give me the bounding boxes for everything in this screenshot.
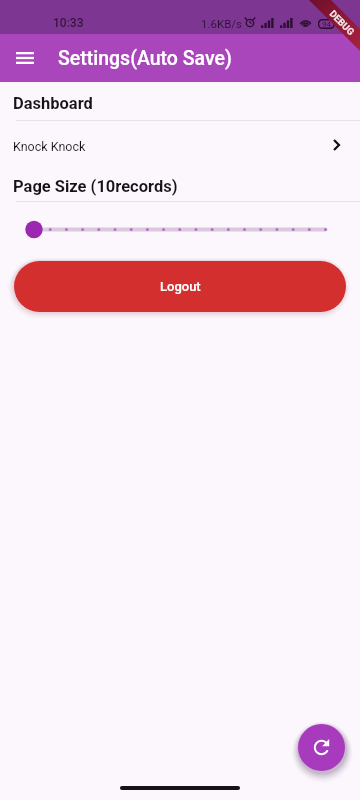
staticText: Knock Knock — [13, 139, 86, 154]
button[interactable]: Dashboard — [0, 82, 360, 120]
staticText: 10:33 — [53, 16, 84, 30]
staticText: Dashboard — [13, 94, 93, 113]
button[interactable]: Page Size (10records) — [0, 168, 360, 201]
staticText: Page Size (10records) — [13, 177, 178, 196]
staticText: DEBUG — [327, 8, 357, 38]
staticText: Logout — [160, 279, 201, 294]
button[interactable]: Page size slider — [0, 214, 360, 244]
button[interactable]: Knock Knock — [0, 121, 360, 168]
staticText: 94 — [322, 20, 331, 29]
button[interactable]: Logout — [14, 261, 346, 312]
staticText: Settings(Auto Save) — [58, 47, 232, 70]
staticText: 1.6KB/s — [201, 17, 243, 30]
button[interactable]: Refresh — [298, 724, 345, 771]
button[interactable]: Open navigation drawer — [5, 38, 45, 78]
